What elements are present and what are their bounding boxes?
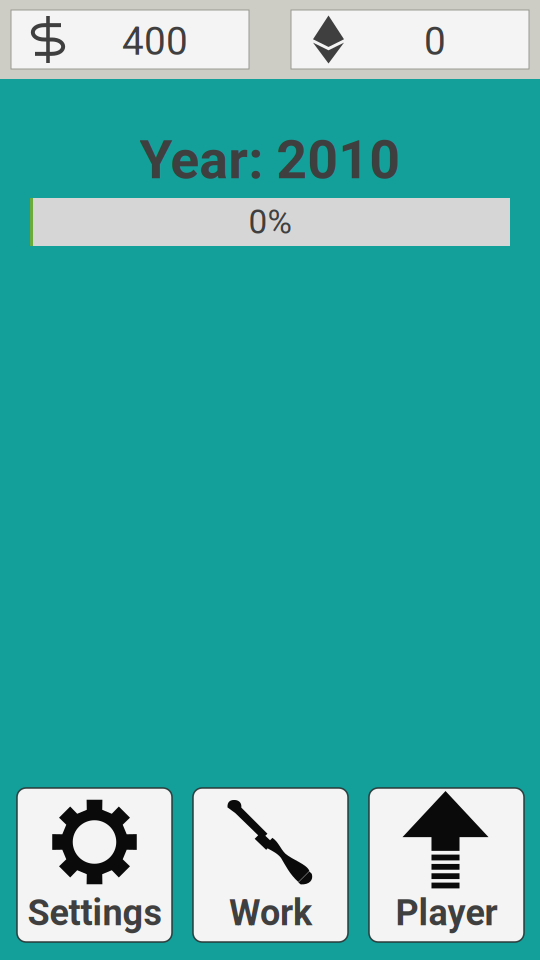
staticText: Work <box>229 892 312 934</box>
button[interactable]: Player <box>369 788 524 942</box>
staticText: 0% <box>248 202 291 242</box>
staticText: Year: 2010 <box>139 129 400 191</box>
staticText: 0 <box>424 19 446 64</box>
staticText: 400 <box>122 19 188 64</box>
button[interactable]: Settings <box>17 788 172 942</box>
button[interactable]: Work <box>193 788 348 942</box>
staticText: Settings <box>27 892 161 934</box>
button[interactable]: 0 <box>291 10 529 69</box>
button[interactable]: 400 <box>11 10 249 69</box>
staticText: Player <box>395 892 497 934</box>
